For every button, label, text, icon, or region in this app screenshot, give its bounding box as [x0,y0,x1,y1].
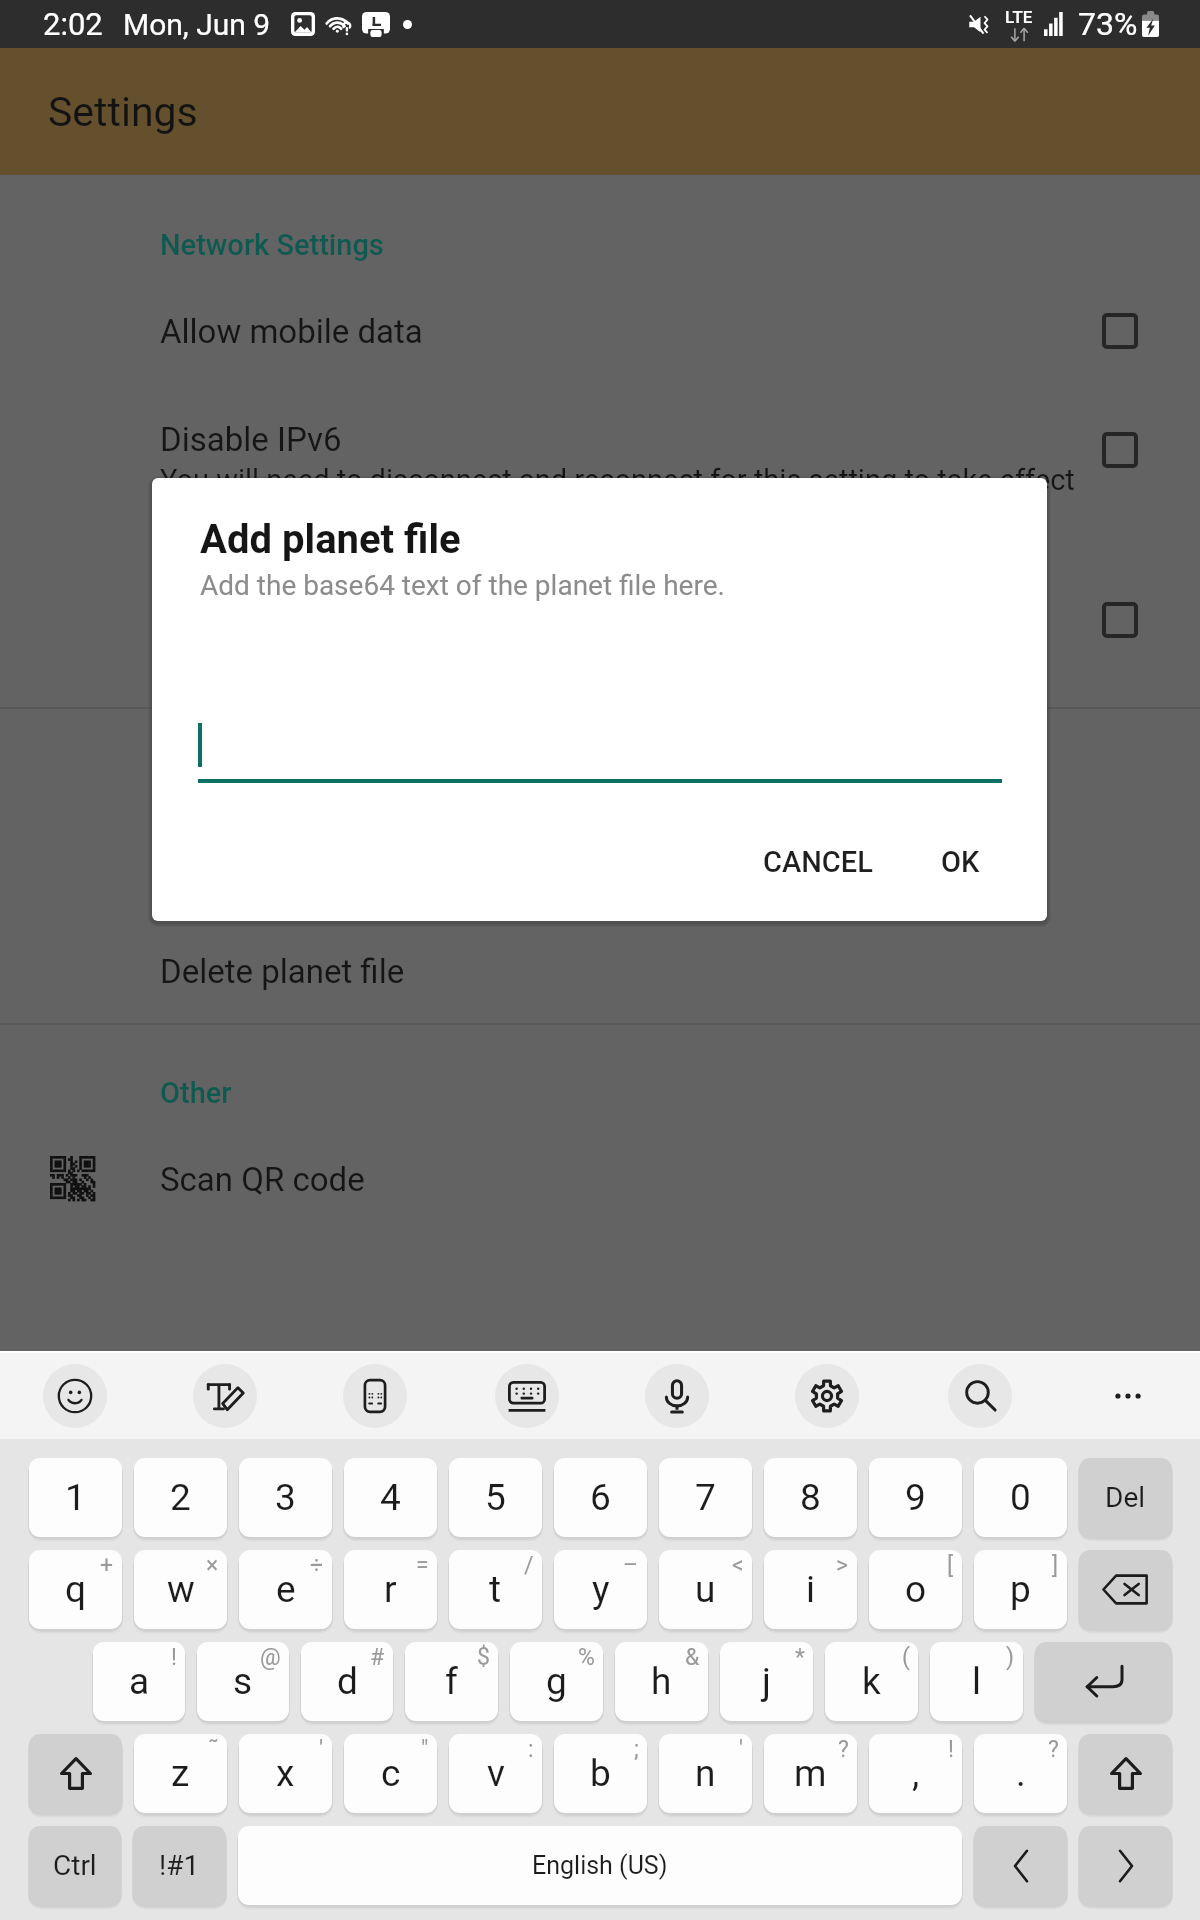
button[interactable]: o [869,1550,962,1629]
button[interactable]: 8 [764,1458,857,1537]
staticText: ( [902,1644,910,1671]
button[interactable]: left [974,1826,1067,1905]
button[interactable]: i [764,1550,857,1629]
button[interactable]: Number pad [343,1364,407,1428]
staticText: – [623,1552,639,1579]
button[interactable]: 9 [869,1458,962,1537]
button[interactable]: !#1 [133,1826,226,1905]
button[interactable]: Keyboard settings [795,1364,859,1428]
button[interactable]: backspace [1079,1550,1172,1629]
staticText: 1 [65,1476,86,1519]
button[interactable]: Disable IPv6 [0,420,1200,497]
staticText: o [905,1568,927,1611]
staticText: # [370,1644,385,1671]
button[interactable]: 5 [449,1458,542,1537]
staticText: i [806,1568,815,1611]
button[interactable]: 7 [659,1458,752,1537]
button[interactable]: k [825,1642,918,1721]
button[interactable]: d [301,1642,393,1721]
button[interactable]: s [197,1642,289,1721]
staticText: × [206,1552,219,1579]
button[interactable]: enter [1035,1642,1172,1721]
staticText: z [171,1752,190,1795]
staticText: m [794,1752,827,1795]
staticText: x [276,1752,295,1795]
staticText: English (US) [532,1851,668,1880]
button[interactable]: . [974,1734,1067,1813]
staticText: c [381,1752,401,1795]
button[interactable]: 3 [239,1458,332,1537]
staticText: ' [739,1736,744,1763]
button[interactable]: y [554,1550,647,1629]
button[interactable]: 0 [974,1458,1067,1537]
button[interactable]: English (US) [238,1826,962,1905]
button[interactable]: Use VPN [0,585,1200,624]
staticText: s [233,1660,253,1703]
staticText: 5 [485,1476,506,1519]
button[interactable]: a [93,1642,185,1721]
button[interactable]: u [659,1550,752,1629]
button[interactable]: z [134,1734,227,1813]
button[interactable]: Allow mobile data [0,312,1200,351]
button[interactable]: Disable IPv6 checkbox [1102,432,1138,468]
button[interactable]: Allow mobile data checkbox [1102,313,1138,349]
staticText: 8 [800,1476,821,1519]
button[interactable]: w [134,1550,227,1629]
staticText: g [546,1660,567,1703]
button[interactable]: p [974,1550,1067,1629]
staticText: Settings [48,88,198,136]
button[interactable]: Ctrl [29,1826,121,1905]
button[interactable]: Search [948,1364,1012,1428]
button[interactable]: , [869,1734,962,1813]
button[interactable]: right [1079,1826,1172,1905]
button[interactable]: e [239,1550,332,1629]
button[interactable]: More options [1096,1364,1160,1428]
button[interactable]: shift [29,1734,122,1813]
button[interactable]: Del [1079,1458,1172,1537]
button[interactable]: r [344,1550,437,1629]
button[interactable]: Emoji [43,1364,107,1428]
staticText: Ctrl [53,1849,97,1882]
button[interactable]: t [449,1550,542,1629]
button[interactable]: OK [921,829,1000,895]
staticText: / [524,1552,534,1579]
button[interactable]: b [554,1734,647,1813]
staticText: ? [1048,1736,1059,1763]
button[interactable]: v [449,1734,542,1813]
button[interactable]: j [720,1642,813,1721]
button[interactable]: h [615,1642,708,1721]
staticText: $ [477,1644,490,1671]
button[interactable]: 6 [554,1458,647,1537]
staticText: < [732,1552,744,1579]
button[interactable]: Use VPN checkbox [1102,602,1138,638]
button[interactable]: l [930,1642,1023,1721]
button[interactable]: q [29,1550,122,1629]
staticText: q [65,1568,87,1611]
staticText: You will need to disconnect and reconnec… [160,463,1075,497]
staticText: 73% [1078,5,1138,43]
staticText: j [762,1660,771,1703]
button[interactable]: Voice input [645,1364,709,1428]
staticText: @ [260,1644,281,1671]
button[interactable]: 1 [29,1458,122,1537]
button[interactable]: Handwriting [193,1364,257,1428]
button[interactable]: x [239,1734,332,1813]
button[interactable]: f [405,1642,498,1721]
staticText: Allow mobile data [160,312,423,351]
staticText: k [862,1660,881,1703]
staticText: f [445,1660,458,1703]
staticText: * [795,1644,805,1671]
staticText: ) [1006,1644,1015,1671]
button[interactable]: shift [1079,1734,1172,1813]
button[interactable]: g [510,1642,603,1721]
button[interactable]: m [764,1734,857,1813]
button[interactable]: 2 [134,1458,227,1537]
staticText: ] [1052,1552,1059,1579]
button[interactable]: n [659,1734,752,1813]
button[interactable]: c [344,1734,437,1813]
staticText: 3 [275,1476,296,1519]
staticText: [ [947,1552,954,1579]
button[interactable]: 4 [344,1458,437,1537]
button[interactable]: Keyboard layout [495,1364,559,1428]
button[interactable]: CANCEL [743,829,893,895]
